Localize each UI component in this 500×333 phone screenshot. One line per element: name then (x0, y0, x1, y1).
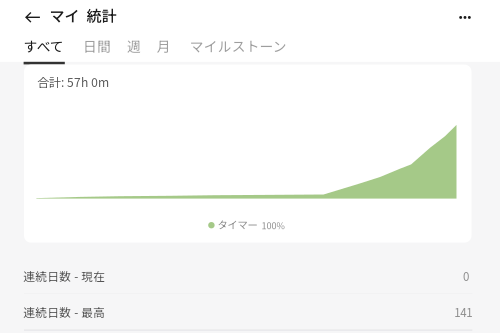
staticText: 合計: 57h 0m (37, 73, 109, 90)
staticText: 連続日数 - 最高 (23, 303, 105, 320)
button[interactable]: More options (448, 0, 482, 34)
staticText: 連続日数 - 現在 (23, 267, 105, 284)
staticText: マイルストーン (190, 36, 287, 56)
staticText: 0 (463, 268, 469, 284)
staticText: タイマー (217, 217, 257, 232)
button[interactable]: Back (16, 0, 56, 33)
button[interactable]: 日間 (80, 33, 113, 59)
button[interactable]: すべて (21, 33, 66, 59)
button[interactable]: 連続日数 - 現在 (0, 257, 500, 293)
staticText: すべて (24, 36, 64, 56)
staticText: 100% (261, 219, 284, 232)
staticText: 週 (127, 36, 141, 56)
staticText: 統計 (86, 4, 116, 26)
button[interactable]: マイルストーン (187, 33, 289, 59)
button[interactable]: 連続日数 - 最高 (0, 293, 500, 329)
staticText: マイ (50, 4, 80, 26)
button[interactable]: 月 (154, 33, 173, 59)
button[interactable]: 週 (125, 33, 144, 59)
staticText: 月 (157, 36, 171, 56)
staticText: 日間 (83, 36, 111, 56)
staticText: 141 (454, 304, 472, 320)
